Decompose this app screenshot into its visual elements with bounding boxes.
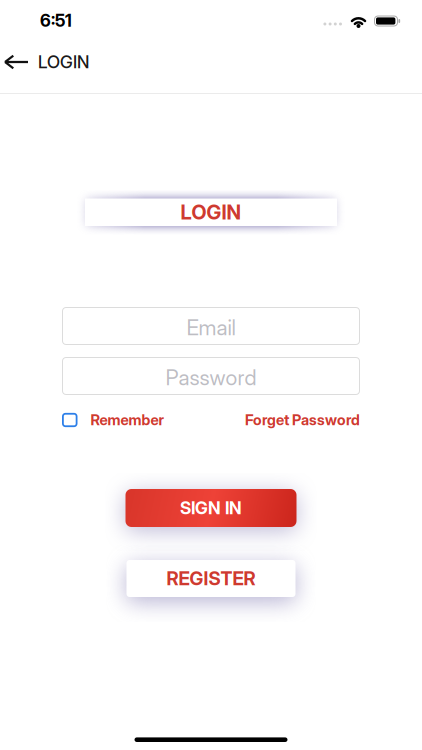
button[interactable]: REGISTER (126, 560, 295, 597)
button[interactable]: Forget Password (245, 411, 360, 429)
button[interactable]: Password (62, 357, 360, 395)
button[interactable]: Back (0, 54, 38, 69)
button[interactable]: Email (62, 307, 360, 345)
button[interactable]: SIGN IN (125, 489, 296, 527)
staticText: LOGIN (180, 200, 241, 224)
staticText: SIGN IN (180, 498, 242, 518)
button[interactable]: Remember (62, 411, 163, 429)
staticText: Remember (90, 411, 163, 429)
staticText: 6:51 (40, 10, 72, 31)
staticText: Password (165, 365, 256, 390)
staticText: Email (186, 315, 235, 340)
staticText: Forget Password (245, 411, 360, 429)
staticText: LOGIN (38, 52, 89, 72)
staticText: REGISTER (166, 567, 255, 589)
